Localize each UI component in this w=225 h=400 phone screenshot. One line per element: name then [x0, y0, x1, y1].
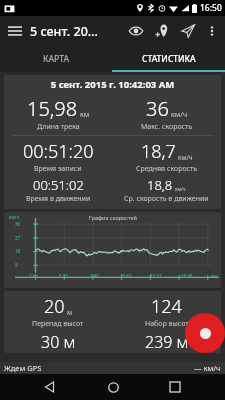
staticText: 16:50 — [200, 2, 222, 14]
staticText: км/ч — [9, 214, 20, 220]
staticText: 13.32 — [150, 273, 162, 279]
button[interactable]: 15,98 — [4, 95, 112, 132]
staticText: 124 — [151, 294, 182, 319]
staticText: км/ч — [171, 109, 188, 119]
staticText: 7.99 — [90, 273, 99, 279]
staticText: 00:51:02 — [33, 176, 84, 194]
button[interactable]: 5 сент. 20… — [30, 16, 123, 46]
staticText: м — [67, 308, 72, 317]
staticText: 30 м — [41, 331, 76, 353]
staticText: км — [80, 109, 90, 119]
staticText: 15.98 — [181, 273, 193, 279]
staticText: Макс. скорость — [141, 122, 193, 132]
staticText: 5 сент. 20… — [30, 23, 98, 40]
staticText: КАРТА — [43, 53, 69, 65]
staticText: 36 — [146, 95, 169, 122]
staticText: — км/ч — [194, 363, 221, 373]
staticText: 36 — [15, 221, 21, 227]
button[interactable]: 20 — [4, 294, 112, 329]
staticText: СТАТИСТИКА — [142, 53, 196, 65]
button[interactable]: 124 — [112, 294, 221, 329]
staticText: Ср. скорость в движении — [124, 194, 209, 204]
staticText: Перепад высот — [32, 319, 84, 329]
staticText: Набор высот — [145, 319, 189, 329]
staticText: 18,7 — [141, 139, 176, 164]
button[interactable]: 36 — [112, 95, 221, 132]
staticText: Время в движении — [26, 194, 91, 204]
button[interactable]: Navigate — [175, 18, 201, 44]
staticText: 10.65 — [120, 273, 132, 279]
staticText: 18 — [15, 248, 21, 254]
staticText: км/ч — [175, 186, 186, 192]
button[interactable]: Start recording — [185, 313, 225, 353]
button[interactable]: Visibility — [123, 18, 149, 44]
button[interactable]: Speed chart — [4, 212, 221, 288]
staticText: График скоростей — [89, 214, 137, 221]
staticText: 27 — [15, 235, 21, 241]
button[interactable]: СТАТИСТИКА — [112, 46, 225, 72]
staticText: Средняя скорость — [136, 164, 198, 174]
staticText: Время записи — [34, 164, 82, 174]
staticText: 20 — [44, 294, 65, 319]
button[interactable]: Open navigation drawer — [0, 16, 30, 46]
button[interactable]: Add marker — [149, 18, 175, 44]
button[interactable]: 00:51:20 — [4, 139, 112, 174]
button[interactable]: 00:51:02 — [4, 176, 112, 204]
staticText: 9 — [15, 262, 18, 268]
button[interactable]: Recents — [162, 374, 188, 400]
staticText: 2.66 — [29, 273, 38, 279]
staticText: км — [211, 273, 217, 279]
staticText: Ждем GPS — [4, 363, 42, 373]
button[interactable]: Home — [100, 374, 126, 400]
staticText: 5.33 — [59, 273, 68, 279]
staticText: Длина трека — [37, 122, 80, 132]
button[interactable]: 18,8 — [112, 176, 221, 204]
staticText: 15,98 — [27, 95, 78, 122]
staticText: 239 м — [145, 331, 189, 353]
staticText: 5 сент. 2015 г. 10:42:03 AM — [4, 78, 221, 91]
staticText: 18,8 — [147, 176, 173, 194]
button[interactable]: КАРТА — [0, 46, 112, 72]
staticText: км/ч — [178, 153, 193, 162]
button[interactable]: 18,7 — [112, 139, 221, 174]
button[interactable]: More options — [201, 20, 223, 42]
staticText: 00:51:20 — [23, 139, 94, 164]
button[interactable]: Back — [37, 374, 63, 400]
